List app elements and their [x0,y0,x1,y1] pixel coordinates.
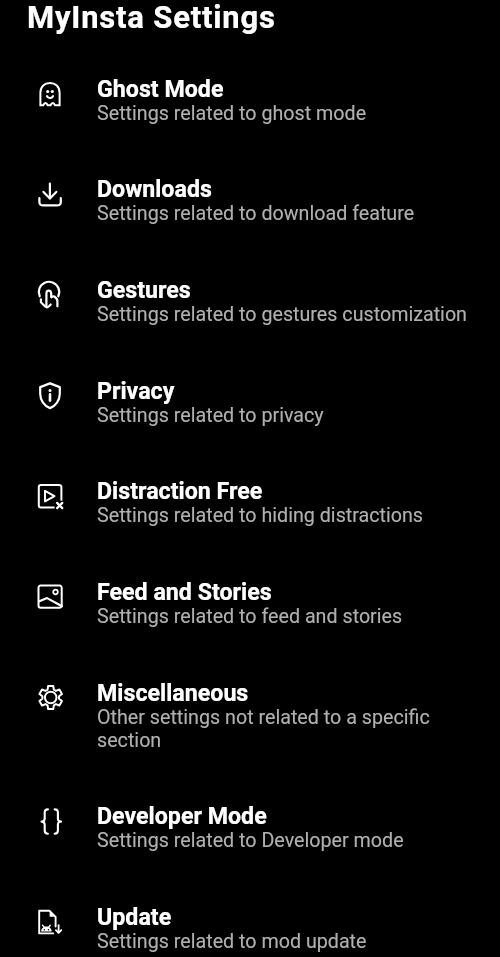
staticText: Other settings not related to a specific… [97,706,492,752]
staticText: Settings related to hiding distractions [97,504,492,527]
button[interactable]: Privacy [0,353,500,454]
button[interactable]: Distraction Free [0,453,500,554]
staticText: Distraction Free [97,477,263,504]
staticText: Settings related to ghost mode [97,102,492,125]
staticText: Gestures [97,276,191,303]
staticText: Settings related to Developer mode [97,829,492,852]
button[interactable]: Update [0,879,500,957]
staticText: Downloads [97,175,212,202]
staticText: Update [97,903,172,930]
button[interactable]: Miscellaneous [0,655,500,777]
staticText: MyInsta Settings [27,0,276,35]
staticText: Privacy [97,377,175,404]
staticText: Miscellaneous [97,679,249,706]
staticText: Settings related to mod update [97,930,492,953]
button[interactable]: Developer Mode [0,778,500,879]
button[interactable]: Gestures [0,252,500,353]
button[interactable]: Feed and Stories [0,554,500,655]
staticText: Settings related to privacy [97,404,492,427]
button[interactable]: Downloads [0,151,500,252]
staticText: Settings related to feed and stories [97,605,492,628]
staticText: Feed and Stories [97,578,272,605]
button[interactable]: Ghost Mode [0,51,500,152]
staticText: Ghost Mode [97,75,224,102]
staticText: Settings related to gestures customizati… [97,303,492,326]
staticText: Settings related to download feature [97,202,492,225]
staticText: Developer Mode [97,802,267,829]
